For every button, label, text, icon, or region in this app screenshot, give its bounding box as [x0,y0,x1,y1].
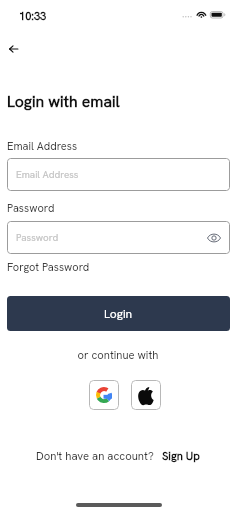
button[interactable]: Password [7,221,230,254]
button[interactable]: Forgot Password [7,260,90,274]
staticText: Email Address [16,168,79,181]
staticText: Login with email [7,91,120,112]
button[interactable]: Sign Up [162,449,200,464]
button[interactable]: Login [7,296,230,331]
staticText: Password [7,201,55,215]
staticText: Don't have an account? [36,449,154,464]
button[interactable]: Email Address [7,158,230,191]
staticText: Login [104,306,133,322]
staticText: Email Address [7,139,78,153]
button[interactable]: Back [4,39,24,59]
button[interactable] [131,380,161,410]
staticText: Password [16,231,59,244]
staticText: or continue with [0,348,236,363]
other: Show password [207,233,221,243]
button[interactable] [89,380,119,410]
staticText: 10:33 [19,9,47,23]
